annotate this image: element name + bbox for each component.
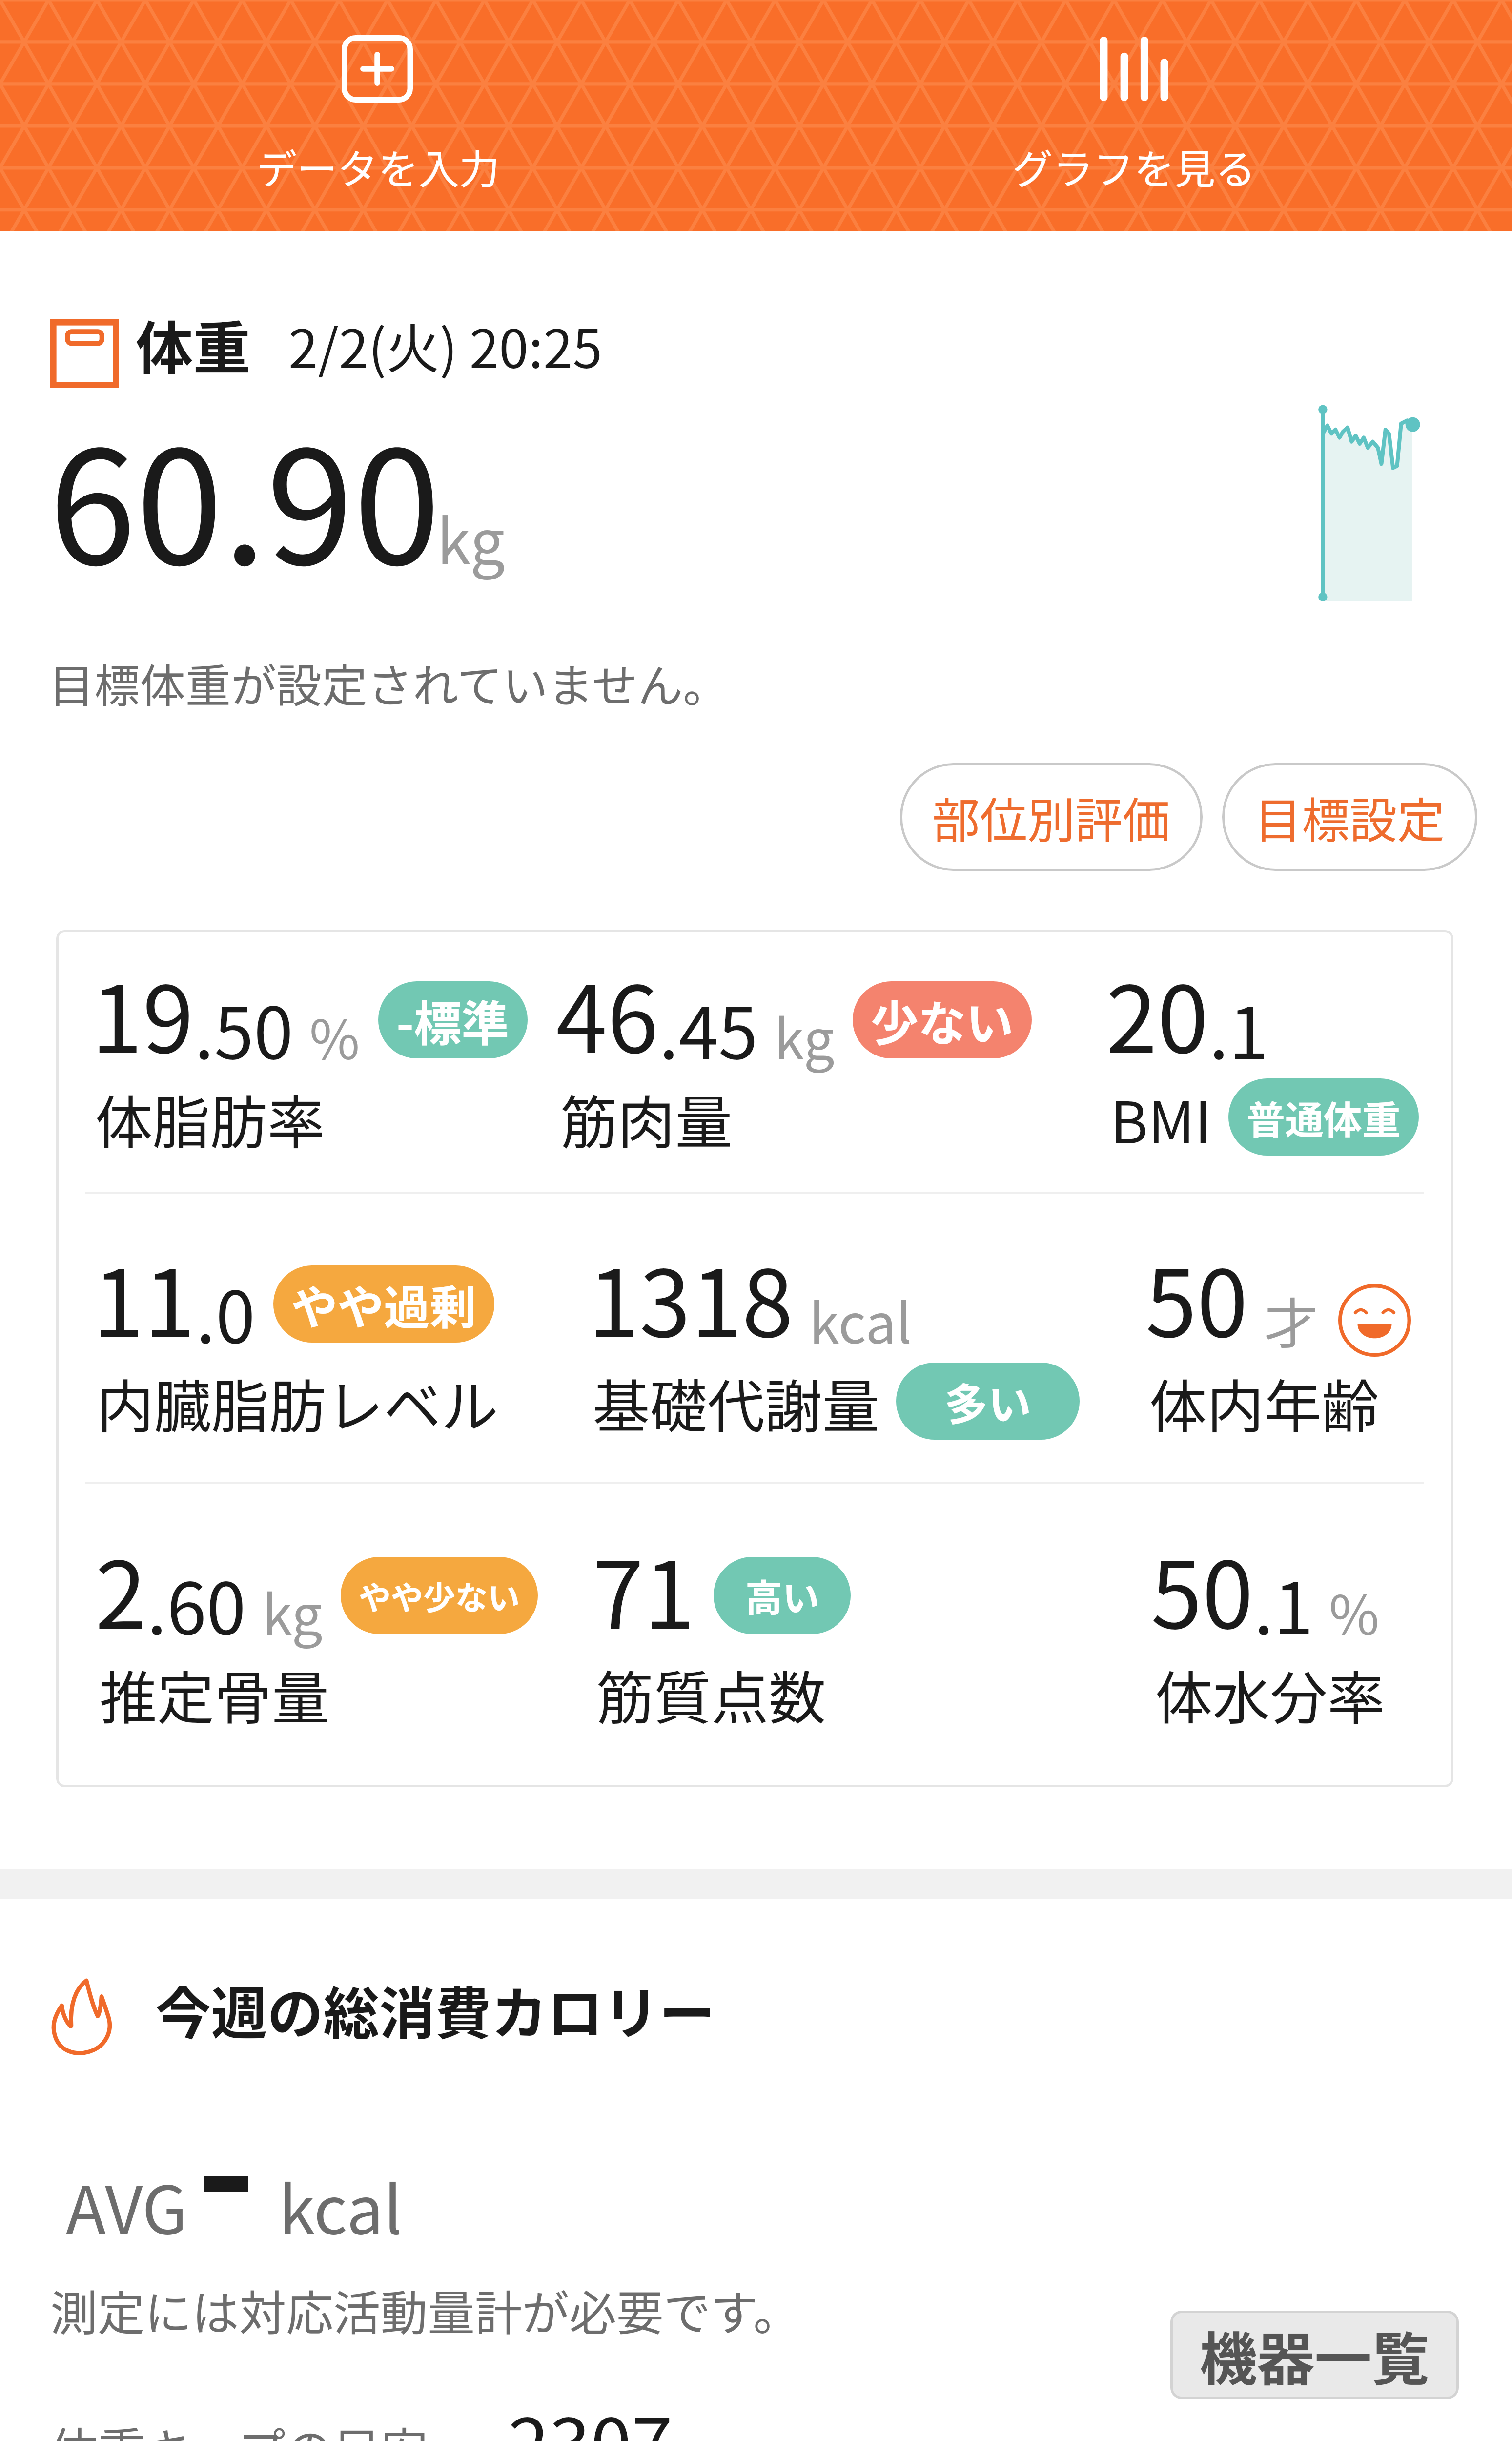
staticText: % <box>309 996 360 1075</box>
staticText: 推定骨量 <box>100 1653 329 1736</box>
staticText: やや過剰 <box>291 1271 476 1338</box>
staticText: 筋質点数 <box>596 1653 826 1736</box>
staticText: やや少ない <box>359 1572 520 1619</box>
staticText: 50 <box>1145 1230 1248 1364</box>
staticText: 内臓脂肪レベル <box>97 1361 499 1444</box>
staticText: .45 <box>659 976 758 1079</box>
staticText: 1318 <box>588 1230 794 1364</box>
staticText: 筋肉量 <box>560 1077 733 1160</box>
staticText: % <box>1329 1572 1380 1651</box>
staticText: .1 <box>1209 976 1268 1079</box>
staticText: 体水分率 <box>1155 1653 1385 1736</box>
staticText: AVG <box>66 2158 187 2253</box>
staticText: kcal <box>279 2158 403 2253</box>
button[interactable]: データを入力 <box>0 0 756 231</box>
staticText: .1 <box>1254 1551 1313 1655</box>
staticText: 2/2(火) 20:25 <box>288 307 603 384</box>
staticText: .60 <box>147 1551 246 1655</box>
staticText: 才 <box>1264 1280 1319 1359</box>
staticText: kcal <box>809 1280 912 1359</box>
staticText: 基礎代謝量 <box>593 1361 879 1444</box>
staticText: 50 <box>1151 1521 1254 1655</box>
staticText: 今週の総消費カロリー <box>155 1969 715 2050</box>
staticText: 11 <box>93 1230 196 1364</box>
button[interactable]: グラフを見る <box>756 0 1512 231</box>
staticText: グラフを見る <box>756 137 1512 196</box>
staticText: 体重 <box>136 303 251 386</box>
staticText: 目標設定 <box>1254 783 1445 851</box>
staticText: 部位別評価 <box>932 783 1170 851</box>
staticText: kg <box>774 996 835 1075</box>
staticText: 体脂肪率 <box>95 1077 325 1160</box>
staticText: .0 <box>196 1260 255 1364</box>
staticText: 体内年齢 <box>1149 1361 1379 1444</box>
staticText: 少ない <box>871 986 1014 1055</box>
button[interactable]: 目標設定 <box>1222 763 1477 871</box>
staticText: -標準 <box>396 986 510 1055</box>
staticText: 測定には対応活動量計が必要です。 <box>50 2276 800 2344</box>
staticText: 2 <box>95 1521 147 1655</box>
staticText: .50 <box>194 976 294 1079</box>
staticText: 60.90 <box>49 382 441 609</box>
staticText: BMI <box>1110 1077 1212 1160</box>
staticText: 高い <box>745 1569 819 1622</box>
staticText: 体重キープの目安 <box>50 2413 429 2441</box>
staticText: kg <box>262 1572 323 1651</box>
staticText: 多い <box>944 1370 1031 1433</box>
staticText: 2307 <box>508 2386 673 2441</box>
staticText: データを入力 <box>0 137 756 196</box>
staticText: 19 <box>91 946 194 1079</box>
staticText: 20 <box>1106 946 1209 1079</box>
staticText: 71 <box>593 1521 695 1655</box>
staticText: 機器一覧 <box>1200 2314 1430 2397</box>
staticText: 46 <box>556 946 659 1079</box>
staticText: 普通体重 <box>1246 1089 1401 1145</box>
button[interactable]: 部位別評価 <box>900 763 1203 871</box>
button[interactable]: 機器一覧 <box>1170 2311 1459 2399</box>
staticText: 目標体重が設定されていません。 <box>49 650 729 716</box>
staticText: kg <box>437 493 505 582</box>
